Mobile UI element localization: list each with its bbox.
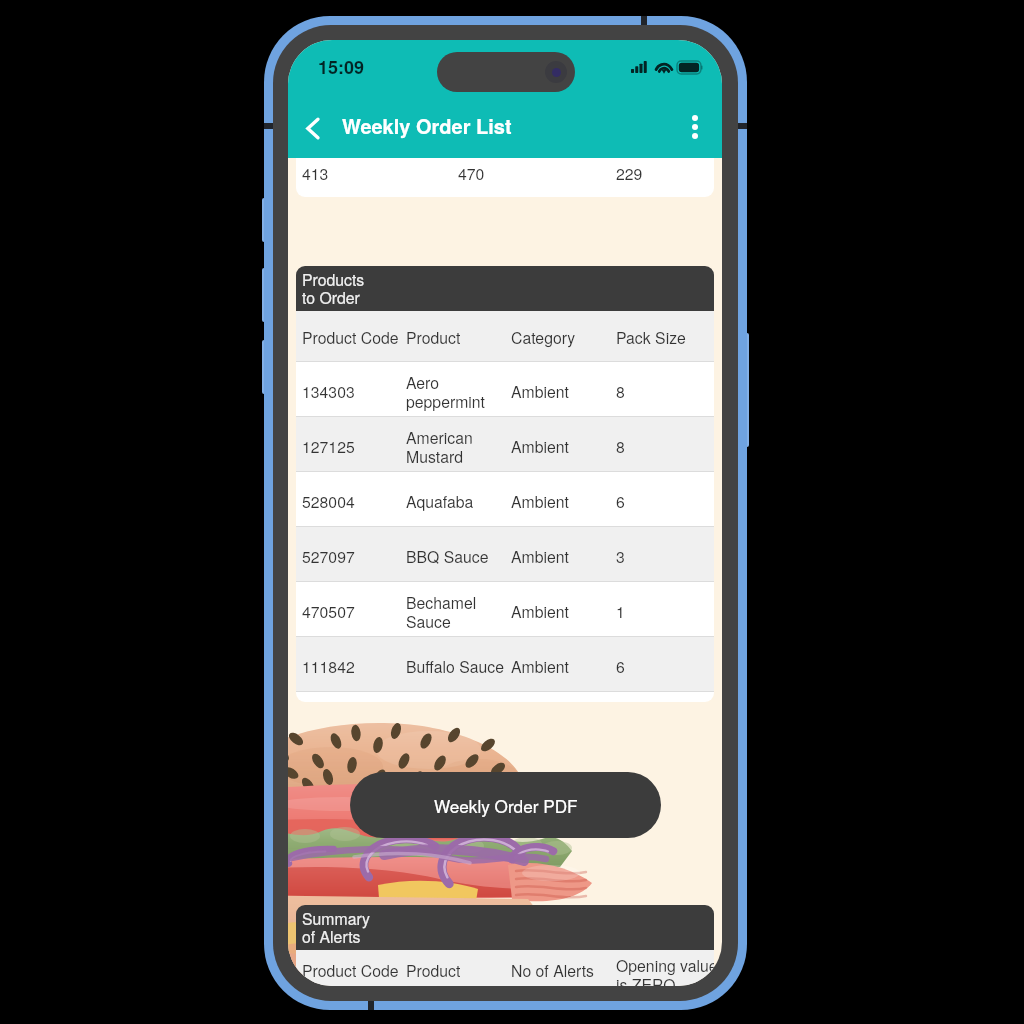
staticText: Weekly Order PDF [434,793,578,818]
staticText: 229 [616,162,643,185]
staticText: Ambient [511,655,569,678]
staticText: Category [511,326,576,349]
staticText: BBQ Sauce [406,545,489,568]
staticText: Product [406,326,461,349]
staticText: Ambient [511,545,569,568]
staticText: 527097 [302,545,355,568]
staticText: 413 [302,162,329,185]
staticText: Ambient [511,490,569,513]
staticText: Products to Order [302,268,365,309]
button[interactable]: Back [290,109,334,153]
staticText: 111842 [302,655,355,678]
staticText: 528004 [302,490,355,513]
button[interactable]: More options [673,109,717,153]
staticText: Ambient [511,380,569,403]
staticText: Product [406,959,461,982]
staticText: 470507 [302,600,355,623]
staticText: 6 [616,655,625,678]
staticText: Opening value is ZERO [616,954,714,986]
staticText: Aero peppermint [406,371,486,412]
staticText: Weekly Order List [342,111,512,140]
button[interactable]: 127125 [296,416,714,471]
staticText: 8 [616,380,625,403]
staticText: 8 [616,435,625,458]
button[interactable]: 111842 [296,636,714,691]
staticText: 134303 [302,380,355,403]
staticText: Summary of Alerts [302,907,370,948]
staticText: Pack Size [616,326,686,349]
staticText: 470 [458,162,485,185]
staticText: Buffalo Sauce [406,655,505,678]
staticText: No of Alerts [511,959,594,982]
staticText: 3 [616,545,625,568]
staticText: Ambient [511,600,569,623]
staticText: American Mustard [406,426,473,467]
button[interactable]: 470507 [296,581,714,636]
staticText: 1 [616,600,625,623]
staticText: Bechamel Sauce [406,591,477,632]
staticText: Product Code [302,959,399,982]
button[interactable]: 527097 [296,526,714,581]
button[interactable]: Weekly Order PDF [350,772,661,838]
staticText: Product Code [302,326,399,349]
staticText: 127125 [302,435,355,458]
staticText: Ambient [511,435,569,458]
staticText: Aquafaba [406,490,474,513]
staticText: 6 [616,490,625,513]
button[interactable]: 134303 [296,361,714,416]
staticText: 15:09 [318,54,365,80]
button[interactable]: 528004 [296,471,714,526]
